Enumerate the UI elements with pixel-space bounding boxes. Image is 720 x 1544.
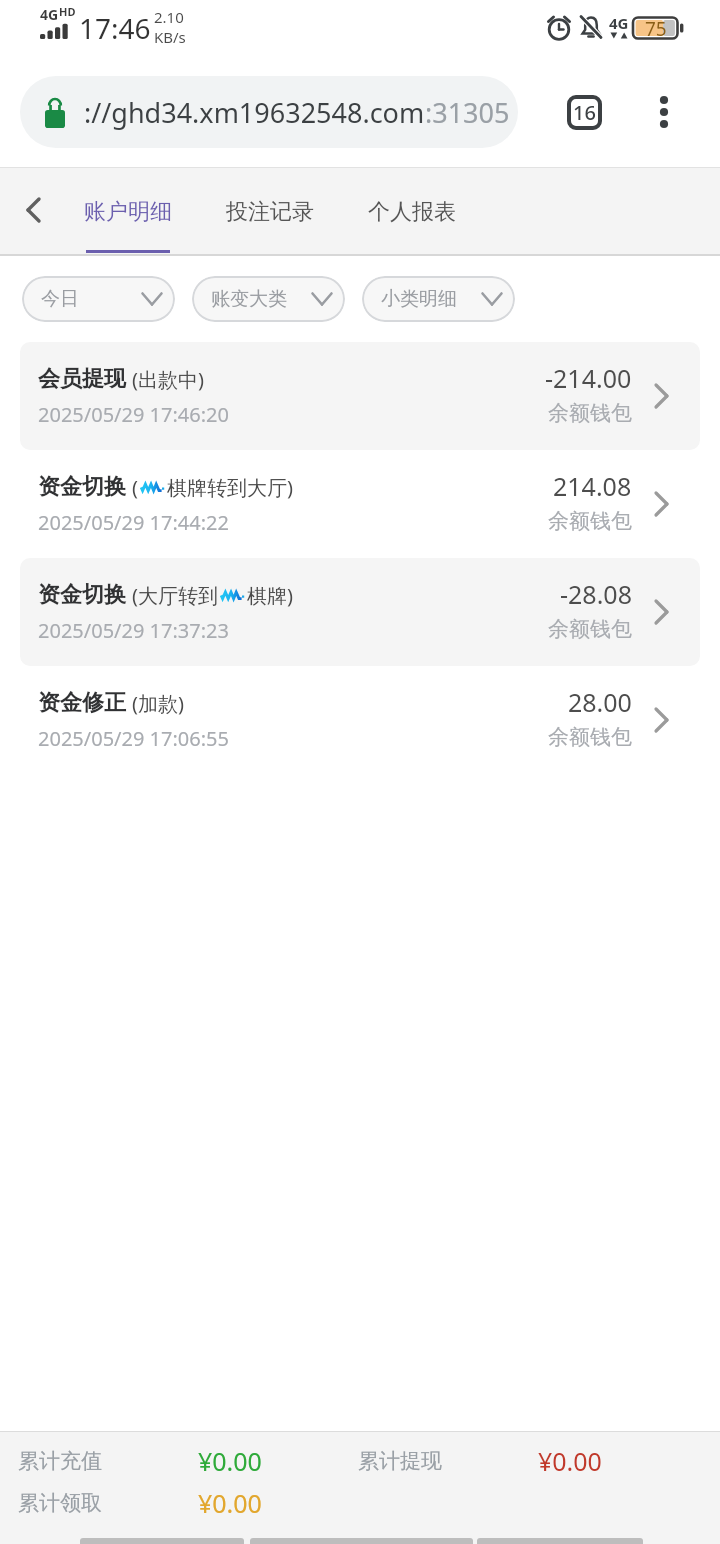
staticText: 2025/05/29 17:44:22: [38, 509, 229, 536]
staticText: 资金切换: [38, 473, 126, 501]
staticText: (加款): [132, 690, 184, 717]
staticText: 余额钱包: [548, 616, 632, 642]
staticText: KB/s: [154, 27, 186, 47]
staticText: (: [132, 474, 138, 501]
staticText: -214.00: [545, 361, 632, 395]
staticText: 4G: [609, 13, 629, 33]
staticText: 28.00: [568, 685, 632, 719]
button[interactable]: Back: [0, 168, 62, 254]
staticText: 资金切换: [38, 581, 126, 609]
staticText: 投注记录: [226, 198, 314, 226]
staticText: 2025/05/29 17:37:23: [38, 617, 229, 644]
button[interactable]: 会员提现: [20, 342, 700, 450]
staticText: 214.08: [553, 469, 632, 503]
staticText: 资金修正: [38, 689, 126, 717]
staticText: ://ghd34.xm19632548.com: [84, 94, 425, 131]
staticText: (出款中): [132, 366, 204, 393]
staticText: 余额钱包: [548, 508, 632, 534]
button[interactable]: 资金切换: [20, 558, 700, 666]
staticText: 累计领取: [18, 1490, 198, 1516]
staticText: 个人报表: [368, 198, 456, 226]
staticText: 17:46: [79, 9, 151, 47]
button[interactable]: More options: [642, 90, 686, 134]
staticText: (大厅转到: [132, 582, 218, 609]
button[interactable]: 个人报表: [350, 168, 474, 254]
staticText: 累计提现: [358, 1448, 538, 1474]
button[interactable]: 投注记录: [208, 168, 332, 254]
staticText: 余额钱包: [548, 724, 632, 750]
staticText: 账户明细: [84, 198, 172, 226]
button[interactable]: Tabs: [558, 86, 610, 138]
button[interactable]: 今日: [22, 276, 175, 322]
staticText: 今日: [41, 287, 79, 311]
staticText: HD: [59, 4, 76, 19]
staticText: 棋牌): [247, 582, 293, 609]
staticText: 2.10: [154, 7, 184, 27]
staticText: -28.08: [560, 577, 632, 611]
staticText: 累计充值: [18, 1448, 198, 1474]
staticText: 2025/05/29 17:46:20: [38, 401, 229, 428]
staticText: ¥0.00: [198, 1444, 358, 1478]
button[interactable]: 资金修正: [20, 666, 700, 774]
button[interactable]: 账户明细: [66, 168, 190, 254]
button[interactable]: 资金切换: [20, 450, 700, 558]
button[interactable]: 小类明细: [362, 276, 515, 322]
staticText: 2025/05/29 17:06:55: [38, 725, 229, 752]
staticText: :31305: [425, 94, 510, 131]
staticText: 棋牌转到大厅): [167, 474, 293, 501]
staticText: ¥0.00: [198, 1486, 262, 1520]
staticText: 16: [573, 99, 596, 126]
staticText: 账变大类: [211, 287, 287, 311]
button[interactable]: ://ghd34.xm19632548.com: [20, 76, 518, 148]
button[interactable]: 账变大类: [192, 276, 345, 322]
staticText: ¥0.00: [538, 1444, 602, 1478]
staticText: 4G: [40, 5, 59, 24]
staticText: 小类明细: [381, 287, 457, 311]
staticText: 会员提现: [38, 365, 126, 393]
staticText: 余额钱包: [548, 400, 632, 426]
staticText: 75: [645, 16, 667, 40]
